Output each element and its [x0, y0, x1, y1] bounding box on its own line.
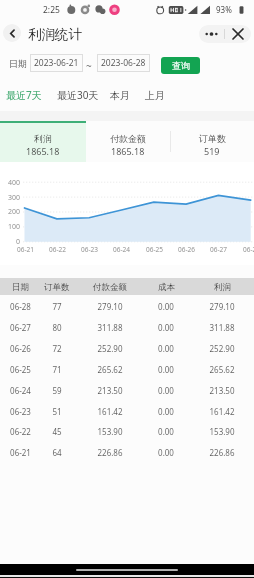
- staticText: 300: [8, 193, 21, 203]
- button[interactable]: 06-28: [0, 295, 254, 316]
- staticText: 06-24: [113, 245, 130, 254]
- staticText: 252.90: [209, 343, 235, 354]
- staticText: 0.00: [158, 364, 174, 375]
- staticText: 59: [52, 385, 62, 396]
- button[interactable]: More options: [199, 25, 224, 43]
- button[interactable]: Close: [225, 25, 251, 43]
- staticText: 利润: [34, 133, 52, 144]
- staticText: 06-24: [10, 385, 31, 396]
- staticText: 付款金额: [93, 282, 127, 293]
- button[interactable]: [170, 121, 254, 162]
- staticText: 400: [8, 178, 21, 188]
- staticText: 06-21: [17, 245, 34, 254]
- staticText: 1865.18: [26, 145, 60, 157]
- staticText: 0.00: [158, 385, 174, 396]
- staticText: 64: [52, 447, 62, 458]
- staticText: 成本: [158, 282, 175, 293]
- button[interactable]: 2023-06-28: [97, 54, 150, 72]
- button[interactable]: 最近30天: [51, 83, 105, 107]
- staticText: 06-25: [146, 245, 163, 254]
- staticText: 利润: [214, 282, 231, 293]
- staticText: 06-27: [210, 245, 227, 254]
- staticText: 226.86: [209, 447, 235, 458]
- staticText: 80: [52, 322, 62, 333]
- button[interactable]: 06-25: [0, 358, 254, 379]
- staticText: 45: [52, 426, 62, 437]
- staticText: 利润统计: [28, 26, 82, 43]
- button[interactable]: 06-23: [0, 400, 254, 421]
- staticText: 265.62: [97, 364, 123, 375]
- button[interactable]: 06-21: [0, 441, 254, 462]
- staticText: 06-26: [178, 245, 195, 254]
- staticText: 51: [52, 406, 62, 417]
- staticText: 06-28: [243, 245, 254, 254]
- staticText: 2:25: [43, 4, 60, 16]
- button[interactable]: [0, 121, 86, 162]
- staticText: 2023-06-28: [101, 57, 146, 69]
- staticText: 200: [8, 207, 21, 217]
- staticText: 252.90: [97, 343, 123, 354]
- staticText: 06-23: [10, 406, 31, 417]
- staticText: 06-23: [81, 245, 98, 254]
- staticText: 153.90: [209, 426, 235, 437]
- staticText: 213.50: [209, 385, 235, 396]
- staticText: 71: [52, 364, 62, 375]
- button[interactable]: 查询: [161, 57, 200, 74]
- staticText: 77: [52, 301, 62, 312]
- button[interactable]: 06-22: [0, 420, 254, 441]
- button[interactable]: 上月: [139, 83, 171, 107]
- staticText: 265.62: [209, 364, 235, 375]
- button[interactable]: 06-27: [0, 316, 254, 337]
- button[interactable]: 06-26: [0, 337, 254, 358]
- staticText: 0.00: [158, 301, 174, 312]
- staticText: 付款金额: [110, 133, 146, 144]
- staticText: 0.00: [158, 322, 174, 333]
- staticText: 0: [16, 237, 21, 247]
- staticText: 279.10: [209, 301, 235, 312]
- staticText: 279.10: [97, 301, 123, 312]
- staticText: 最近30天: [57, 88, 99, 102]
- staticText: 519: [204, 145, 220, 157]
- staticText: 311.88: [97, 322, 123, 333]
- button[interactable]: 06-24: [0, 379, 254, 400]
- staticText: 06-21: [10, 447, 31, 458]
- staticText: 订单数: [199, 133, 226, 144]
- staticText: 2023-06-21: [34, 57, 79, 69]
- staticText: 161.42: [209, 406, 235, 417]
- staticText: 最近7天: [6, 88, 42, 102]
- staticText: 06-28: [10, 301, 31, 312]
- button[interactable]: [86, 121, 170, 162]
- staticText: 06-22: [10, 426, 31, 437]
- staticText: 06-22: [49, 245, 66, 254]
- staticText: 1865.18: [111, 145, 145, 157]
- staticText: 0.00: [158, 426, 174, 437]
- button[interactable]: 2023-06-21: [30, 54, 83, 72]
- staticText: 本月: [110, 89, 130, 102]
- staticText: 查询: [172, 60, 190, 71]
- staticText: 153.90: [97, 426, 123, 437]
- staticText: 0.00: [158, 447, 174, 458]
- button[interactable]: 最近7天: [0, 83, 48, 107]
- staticText: 06-26: [10, 343, 31, 354]
- staticText: 213.50: [97, 385, 123, 396]
- staticText: 0.00: [158, 343, 174, 354]
- staticText: 日期: [12, 282, 29, 293]
- button[interactable]: Back: [3, 24, 21, 42]
- staticText: 226.86: [97, 447, 123, 458]
- staticText: 0.00: [158, 406, 174, 417]
- staticText: 161.42: [97, 406, 123, 417]
- staticText: 上月: [145, 89, 165, 102]
- staticText: 订单数: [44, 282, 70, 293]
- staticText: 311.88: [209, 322, 235, 333]
- staticText: 日期: [9, 58, 27, 69]
- button[interactable]: 本月: [104, 83, 136, 107]
- staticText: 06-25: [10, 364, 31, 375]
- staticText: 93%: [216, 4, 232, 15]
- staticText: ~: [86, 59, 92, 73]
- staticText: 06-27: [10, 322, 31, 333]
- staticText: 72: [52, 343, 62, 354]
- staticText: 100: [8, 222, 21, 232]
